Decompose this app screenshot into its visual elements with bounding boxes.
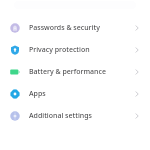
staticText: Additional settings (29, 111, 132, 121)
staticText: Passwords & security (29, 23, 132, 33)
other: Open Passwords & security (132, 23, 142, 33)
other: Open Privacy protection (132, 45, 142, 55)
button[interactable]: Passwords & security (0, 17, 150, 39)
staticText: Battery & performance (29, 67, 132, 77)
staticText: Privacy protection (29, 45, 132, 55)
other: Open Additional settings (132, 111, 142, 121)
button[interactable]: Privacy protection (0, 39, 150, 61)
button[interactable]: Apps (0, 83, 150, 105)
staticText: Apps (29, 89, 132, 99)
button[interactable]: Additional settings (0, 105, 150, 127)
other: Open Battery & performance (132, 67, 142, 77)
button[interactable]: Battery & performance (0, 61, 150, 83)
other: Open Apps (132, 89, 142, 99)
